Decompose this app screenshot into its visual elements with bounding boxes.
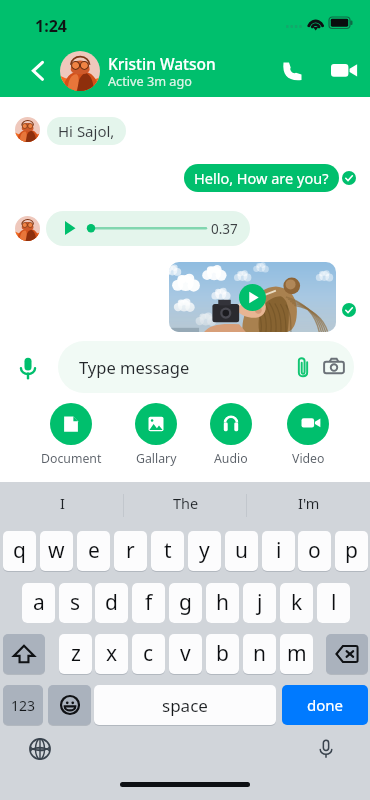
- button[interactable]: t: [151, 531, 184, 571]
- staticText: k: [291, 588, 303, 617]
- staticText: y: [199, 536, 210, 565]
- button[interactable]: Back: [21, 53, 57, 89]
- staticText: u: [235, 536, 248, 565]
- staticText: e: [88, 536, 100, 565]
- button[interactable]: Dictate: [314, 737, 338, 761]
- button[interactable]: y: [188, 531, 221, 571]
- staticText: 123: [11, 696, 36, 715]
- button[interactable]: Emoji: [48, 685, 91, 725]
- button[interactable]: l: [317, 583, 350, 623]
- button[interactable]: n: [243, 634, 276, 674]
- staticText: The: [173, 493, 199, 513]
- staticText: q: [13, 536, 26, 565]
- staticText: Hi Sajol,: [58, 121, 115, 141]
- staticText: Hello, How are you?: [194, 168, 329, 188]
- button[interactable]: e: [77, 531, 110, 571]
- button[interactable]: Play voice message: [46, 211, 250, 246]
- button[interactable]: Backspace: [326, 634, 368, 674]
- button[interactable]: space: [94, 685, 276, 725]
- button[interactable]: f: [132, 583, 165, 623]
- button[interactable]: Change language: [28, 737, 52, 761]
- button[interactable]: m: [280, 634, 313, 674]
- button[interactable]: x: [95, 634, 128, 674]
- button[interactable]: s: [59, 583, 92, 623]
- button[interactable]: k: [280, 583, 313, 623]
- staticText: Type message: [79, 356, 190, 378]
- staticText: p: [345, 536, 358, 565]
- staticText: w: [48, 536, 65, 565]
- staticText: 0.37: [211, 220, 238, 238]
- staticText: c: [143, 639, 154, 668]
- staticText: Audio: [214, 450, 248, 467]
- button[interactable]: a: [22, 583, 55, 623]
- staticText: s: [70, 588, 81, 617]
- staticText: Active 3m ago: [108, 72, 192, 89]
- staticText: o: [308, 536, 321, 565]
- button[interactable]: Audio: [191, 403, 271, 467]
- button[interactable]: b: [206, 634, 239, 674]
- staticText: 1:24: [35, 15, 67, 37]
- button[interactable]: h: [206, 583, 239, 623]
- staticText: l: [331, 588, 337, 617]
- button[interactable]: Voice input: [12, 352, 44, 384]
- button[interactable]: Play video: [169, 262, 336, 332]
- button[interactable]: p: [335, 531, 368, 571]
- button[interactable]: Attach file: [290, 354, 316, 380]
- button[interactable]: Video: [268, 403, 348, 467]
- staticText: r: [126, 536, 135, 565]
- button[interactable]: Document: [31, 403, 111, 467]
- button[interactable]: 123: [3, 685, 43, 725]
- staticText: b: [216, 639, 229, 668]
- staticText: space: [162, 694, 208, 717]
- button[interactable]: Shift: [3, 634, 45, 674]
- button[interactable]: Gallary: [116, 403, 196, 467]
- staticText: h: [216, 588, 229, 617]
- button[interactable]: r: [114, 531, 147, 571]
- button[interactable]: q: [3, 531, 36, 571]
- button[interactable]: Video call: [320, 53, 356, 89]
- button[interactable]: i: [262, 531, 295, 571]
- staticText: I: [60, 493, 65, 513]
- button[interactable]: done: [282, 685, 368, 725]
- staticText: Video: [292, 450, 325, 467]
- button[interactable]: g: [169, 583, 202, 623]
- staticText: done: [307, 695, 344, 715]
- staticText: m: [287, 639, 307, 668]
- staticText: j: [257, 588, 263, 617]
- staticText: n: [253, 639, 266, 668]
- staticText: Kristin Watson: [108, 53, 216, 74]
- staticText: Document: [41, 450, 102, 467]
- button[interactable]: I'm: [247, 482, 370, 526]
- button[interactable]: u: [225, 531, 258, 571]
- button[interactable]: d: [95, 583, 128, 623]
- staticText: Gallary: [136, 450, 177, 467]
- button[interactable]: I: [0, 482, 124, 526]
- button[interactable]: c: [132, 634, 165, 674]
- button[interactable]: o: [298, 531, 331, 571]
- button[interactable]: Hi Sajol,: [47, 117, 126, 145]
- staticText: a: [33, 588, 45, 617]
- button[interactable]: Call: [275, 53, 311, 89]
- button[interactable]: The: [124, 482, 247, 526]
- button[interactable]: Camera: [321, 354, 347, 380]
- button[interactable]: w: [40, 531, 73, 571]
- staticText: v: [180, 639, 191, 668]
- staticText: I'm: [298, 493, 320, 513]
- staticText: f: [145, 588, 153, 617]
- button[interactable]: v: [169, 634, 202, 674]
- staticText: x: [106, 639, 118, 668]
- button[interactable]: Type message: [58, 341, 354, 393]
- staticText: z: [71, 639, 81, 668]
- staticText: t: [164, 536, 172, 565]
- staticText: g: [179, 588, 192, 617]
- staticText: d: [105, 588, 118, 617]
- button[interactable]: Hello, How are you?: [184, 164, 339, 192]
- button[interactable]: z: [59, 634, 92, 674]
- button[interactable]: j: [243, 583, 276, 623]
- staticText: i: [276, 536, 282, 565]
